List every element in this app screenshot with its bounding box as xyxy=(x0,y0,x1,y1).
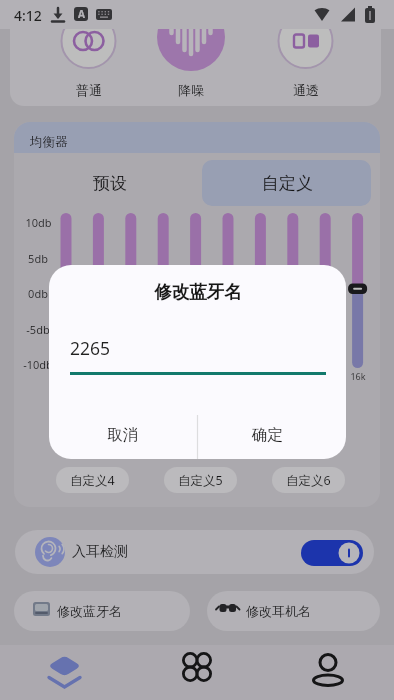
staticText: 10db xyxy=(25,215,52,230)
button[interactable]: 自定义5 xyxy=(164,467,237,493)
staticText: 预设 xyxy=(93,173,127,194)
button[interactable] xyxy=(25,645,105,700)
staticText: 2265 xyxy=(70,336,111,360)
staticText: A xyxy=(78,7,85,21)
staticText: 修改蓝牙名 xyxy=(154,281,242,303)
button[interactable]: 自定义4 xyxy=(56,467,129,493)
staticText: 降噪 xyxy=(178,82,204,98)
staticText: 自定义 xyxy=(262,173,313,194)
staticText: 均衡器 xyxy=(30,134,68,150)
staticText: 确定 xyxy=(252,425,283,445)
button[interactable]: 确定 xyxy=(227,417,307,453)
staticText: 4:12 xyxy=(14,6,42,25)
staticText: -10db xyxy=(23,357,53,372)
staticText: 通透 xyxy=(293,82,319,98)
staticText: 自定义5 xyxy=(178,472,223,489)
button[interactable] xyxy=(14,591,190,631)
button[interactable] xyxy=(207,591,380,631)
staticText: 普通 xyxy=(76,82,102,98)
button[interactable] xyxy=(278,14,333,69)
button[interactable]: 预设 xyxy=(50,170,170,196)
staticText: 取消 xyxy=(107,425,138,445)
button[interactable] xyxy=(202,160,371,206)
staticText: 修改蓝牙名 xyxy=(57,603,122,619)
button[interactable]: 取消 xyxy=(82,417,162,453)
staticText: 自定义4 xyxy=(70,472,115,489)
button[interactable] xyxy=(288,645,368,700)
staticText: 0db xyxy=(28,286,48,301)
staticText: 16k xyxy=(350,370,366,382)
staticText: 入耳检测 xyxy=(72,543,128,561)
button[interactable] xyxy=(61,14,116,69)
staticText: 自定义6 xyxy=(286,472,331,489)
staticText: 5db xyxy=(28,251,48,266)
button[interactable] xyxy=(15,530,374,574)
button[interactable]: 自定义6 xyxy=(272,467,345,493)
button[interactable] xyxy=(157,645,237,700)
button[interactable] xyxy=(157,3,225,71)
staticText: 修改耳机名 xyxy=(246,603,311,619)
staticText: -5db xyxy=(26,322,50,337)
